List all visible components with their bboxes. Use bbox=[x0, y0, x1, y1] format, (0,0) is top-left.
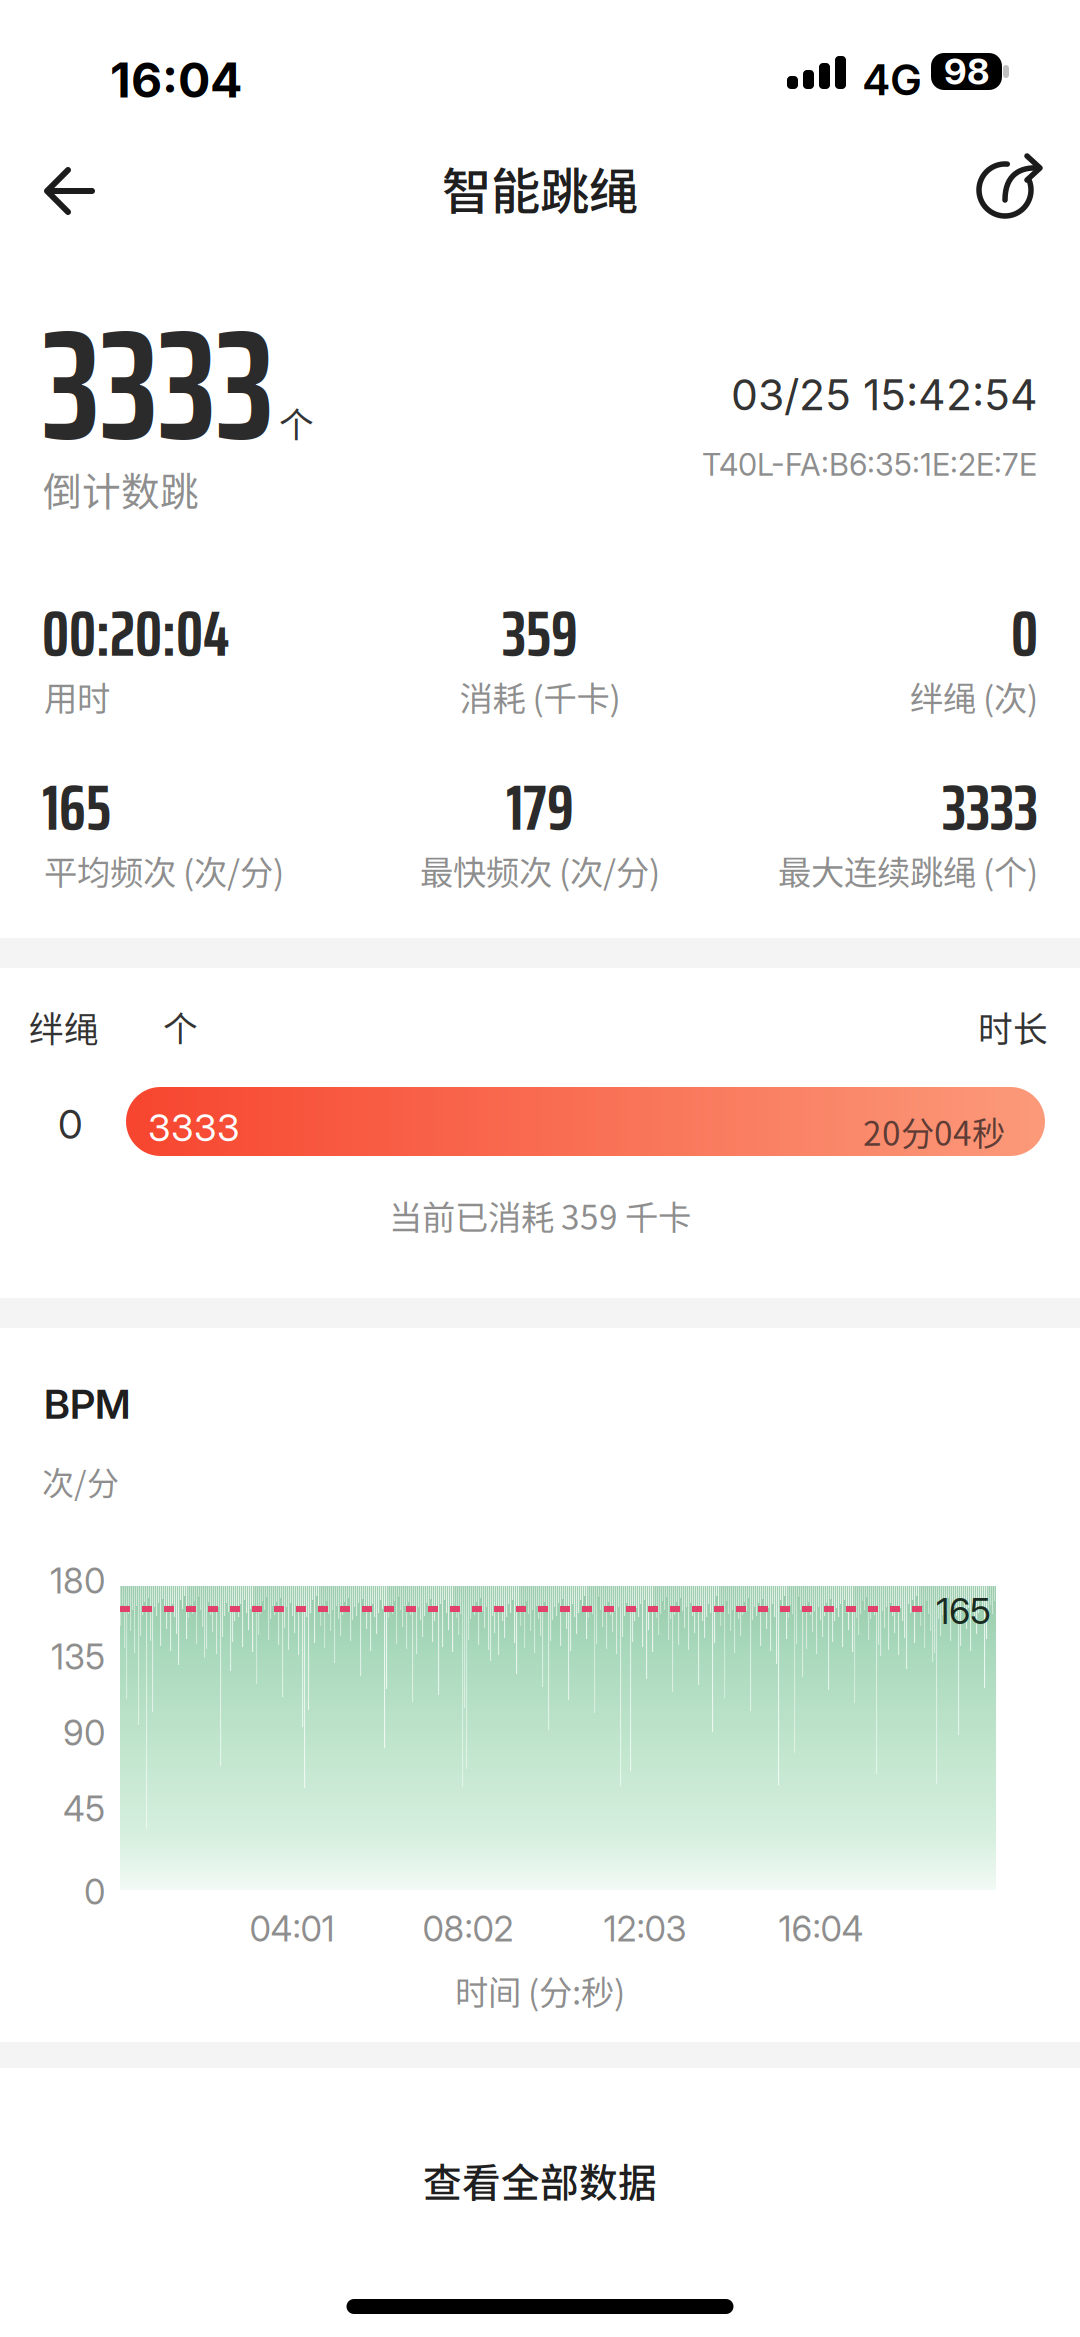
staticText: 165 bbox=[42, 757, 111, 858]
staticText: 90 bbox=[63, 1712, 105, 1754]
staticText: 次/分 bbox=[42, 1458, 119, 1504]
button[interactable]: Back bbox=[21, 143, 117, 239]
staticText: 12:03 bbox=[603, 1908, 686, 1950]
staticText: 倒计数跳 bbox=[43, 461, 199, 517]
staticText: 最快频次 (次/分) bbox=[420, 846, 660, 894]
staticText: 时长 bbox=[978, 1002, 1048, 1052]
staticText: 个 bbox=[279, 398, 314, 448]
staticText: 179 bbox=[506, 757, 574, 858]
staticText: 当前已消耗 359 千卡 bbox=[389, 1191, 691, 1239]
staticText: 平均频次 (次/分) bbox=[44, 846, 284, 894]
staticText: 03/25 15:42:54 bbox=[731, 369, 1038, 421]
staticText: 0 bbox=[58, 1100, 83, 1148]
staticText: 用时 bbox=[44, 672, 110, 720]
staticText: 4G bbox=[862, 54, 922, 106]
staticText: 180 bbox=[50, 1560, 105, 1602]
staticText: T40L-FA:B6:35:1E:2E:7E bbox=[702, 446, 1037, 483]
staticText: BPM bbox=[44, 1380, 130, 1428]
staticText: 165 bbox=[936, 1589, 991, 1633]
staticText: 0 bbox=[84, 1871, 105, 1913]
staticText: 45 bbox=[63, 1788, 105, 1830]
staticText: 359 bbox=[502, 583, 578, 684]
staticText: 04:01 bbox=[249, 1908, 334, 1950]
staticText: 0 bbox=[1011, 583, 1038, 684]
staticText: 最大连续跳绳 (个) bbox=[778, 846, 1038, 894]
staticText: 08:02 bbox=[422, 1908, 513, 1950]
staticText: 00:20:04 bbox=[42, 583, 229, 684]
staticText: 3333 bbox=[148, 1105, 240, 1150]
staticText: 绊绳 bbox=[29, 1002, 99, 1052]
button[interactable]: Share bbox=[960, 142, 1056, 238]
staticText: 98 bbox=[944, 50, 989, 93]
staticText: 智能跳绳 bbox=[442, 152, 638, 223]
staticText: 20分04秒 bbox=[863, 1107, 1005, 1155]
staticText: 135 bbox=[51, 1636, 105, 1678]
staticText: 3333 bbox=[42, 265, 274, 506]
staticText: 3333 bbox=[942, 757, 1038, 858]
staticText: 16:04 bbox=[110, 51, 242, 109]
button[interactable]: 查看全部数据 bbox=[0, 2115, 1080, 2245]
staticText: 消耗 (千卡) bbox=[459, 672, 620, 720]
staticText: 时间 (分:秒) bbox=[455, 1966, 625, 2014]
staticText: 绊绳 (次) bbox=[910, 672, 1038, 720]
staticText: 个 bbox=[163, 1002, 198, 1052]
staticText: 查看全部数据 bbox=[423, 2152, 657, 2208]
staticText: 16:04 bbox=[778, 1908, 863, 1950]
